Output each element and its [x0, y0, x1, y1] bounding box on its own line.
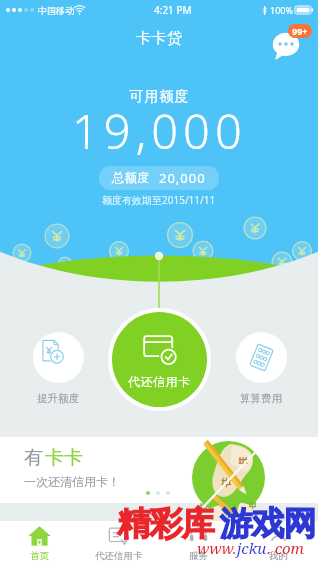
staticText: 额度有效期至2015/11/11: [102, 193, 216, 207]
staticText: 有: [24, 446, 43, 470]
staticText: 可用额度: [129, 88, 189, 106]
button[interactable]: 提升额度: [25, 332, 91, 405]
staticText: 我的: [269, 550, 288, 562]
button[interactable]: 有: [0, 437, 318, 503]
button[interactable]: 代还信用卡: [79, 521, 158, 565]
staticText: 99+: [292, 25, 308, 37]
staticText: 20,000: [159, 169, 206, 187]
staticText: 一次还清信用卡！: [24, 474, 120, 489]
staticText: 4:21 PM: [154, 3, 192, 17]
staticText: 卡卡贷: [136, 29, 183, 48]
button[interactable]: 我的: [238, 521, 318, 565]
staticText: 100%: [270, 4, 293, 16]
staticText: www.: [197, 538, 237, 558]
staticText: 算算费用: [240, 392, 282, 405]
staticText: 总额度: [112, 170, 150, 186]
staticText: . com: [267, 538, 305, 558]
staticText: 代还信用卡: [128, 374, 191, 389]
staticText: 精彩库: [118, 503, 214, 545]
button[interactable]: 首页: [0, 521, 79, 565]
staticText: 卡卡: [45, 446, 83, 470]
staticText: 首页: [30, 550, 49, 562]
staticText: 游戏网: [220, 503, 316, 545]
button[interactable]: 服务: [158, 521, 238, 565]
staticText: 中国移动: [38, 5, 74, 16]
staticText: 服务: [189, 550, 208, 562]
button[interactable]: 算算费用: [228, 332, 294, 405]
staticText: 19,000: [72, 99, 247, 163]
staticText: jcku: [237, 538, 267, 558]
button[interactable]: 代还信用卡: [112, 312, 207, 407]
staticText: 提升额度: [37, 392, 79, 405]
button[interactable]: Messages: [270, 24, 310, 64]
staticText: 代还信用卡: [95, 550, 143, 562]
